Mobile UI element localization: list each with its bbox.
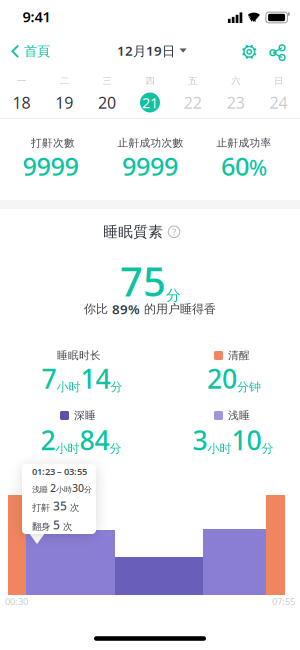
staticText: 五 (188, 75, 197, 87)
staticText: 89% (112, 300, 140, 318)
staticText: 止鼾成功次數 (117, 136, 183, 149)
button[interactable]: 五 (171, 70, 214, 113)
staticText: 21 (142, 93, 158, 112)
staticText: 二 (60, 75, 69, 87)
staticText: 2小时84分 (40, 422, 121, 458)
button[interactable]: 三 (86, 70, 128, 113)
staticText: 9:41 (22, 7, 50, 26)
button[interactable] (269, 44, 285, 60)
staticText: 23 (227, 92, 245, 113)
staticText: 打鼾 35 次 (32, 498, 79, 514)
button[interactable]: 六 (214, 70, 257, 113)
staticText: 六 (231, 75, 240, 87)
staticText: 18 (12, 92, 30, 113)
staticText: 22 (184, 92, 202, 113)
staticText: 9999 (122, 149, 178, 183)
button[interactable]: 12月19日 (117, 42, 187, 59)
staticText: 深睡 (74, 409, 96, 422)
staticText: 9999 (22, 149, 78, 183)
staticText: 07:55 (272, 595, 295, 608)
staticText: 01:23 – 03:55 (32, 465, 87, 478)
button[interactable]: 二 (43, 70, 86, 113)
staticText: 20 (98, 92, 116, 113)
staticText: 60% (221, 149, 267, 183)
staticText: 浅睡 2小時30分 (32, 481, 92, 495)
staticText: 一 (17, 75, 26, 87)
staticText: ? (172, 226, 176, 238)
staticText: 19 (55, 92, 73, 113)
button[interactable]: 首頁 (11, 43, 50, 59)
staticText: 三 (103, 75, 112, 87)
staticText: 24 (269, 92, 287, 113)
staticText: 四 (145, 75, 154, 87)
staticText: 3小时10分 (192, 422, 273, 458)
staticText: 75分 (120, 254, 181, 307)
staticText: 睡眠質素 (103, 223, 163, 241)
staticText: 首頁 (24, 43, 50, 59)
staticText: 清醒 (228, 349, 250, 362)
staticText: 止鼾成功率 (216, 136, 271, 149)
staticText: 浅睡 (228, 409, 250, 422)
staticText: 00:30 (5, 595, 28, 608)
staticText: 你比 (84, 302, 112, 316)
staticText: 20分钟 (207, 361, 261, 396)
button[interactable]: 四 (129, 70, 171, 113)
staticText: 的用户睡得香 (140, 302, 216, 316)
staticText: 翻身 5 次 (32, 517, 72, 533)
staticText: 睡眠时长 (57, 349, 101, 362)
button[interactable]: 一 (0, 70, 43, 113)
staticText: 7小时14分 (41, 361, 122, 396)
button[interactable] (242, 44, 257, 59)
staticText: 打鼾次數 (31, 136, 75, 149)
staticText: 日 (274, 75, 283, 87)
staticText: 12月19日 (117, 42, 175, 59)
button[interactable]: 日 (257, 70, 300, 113)
